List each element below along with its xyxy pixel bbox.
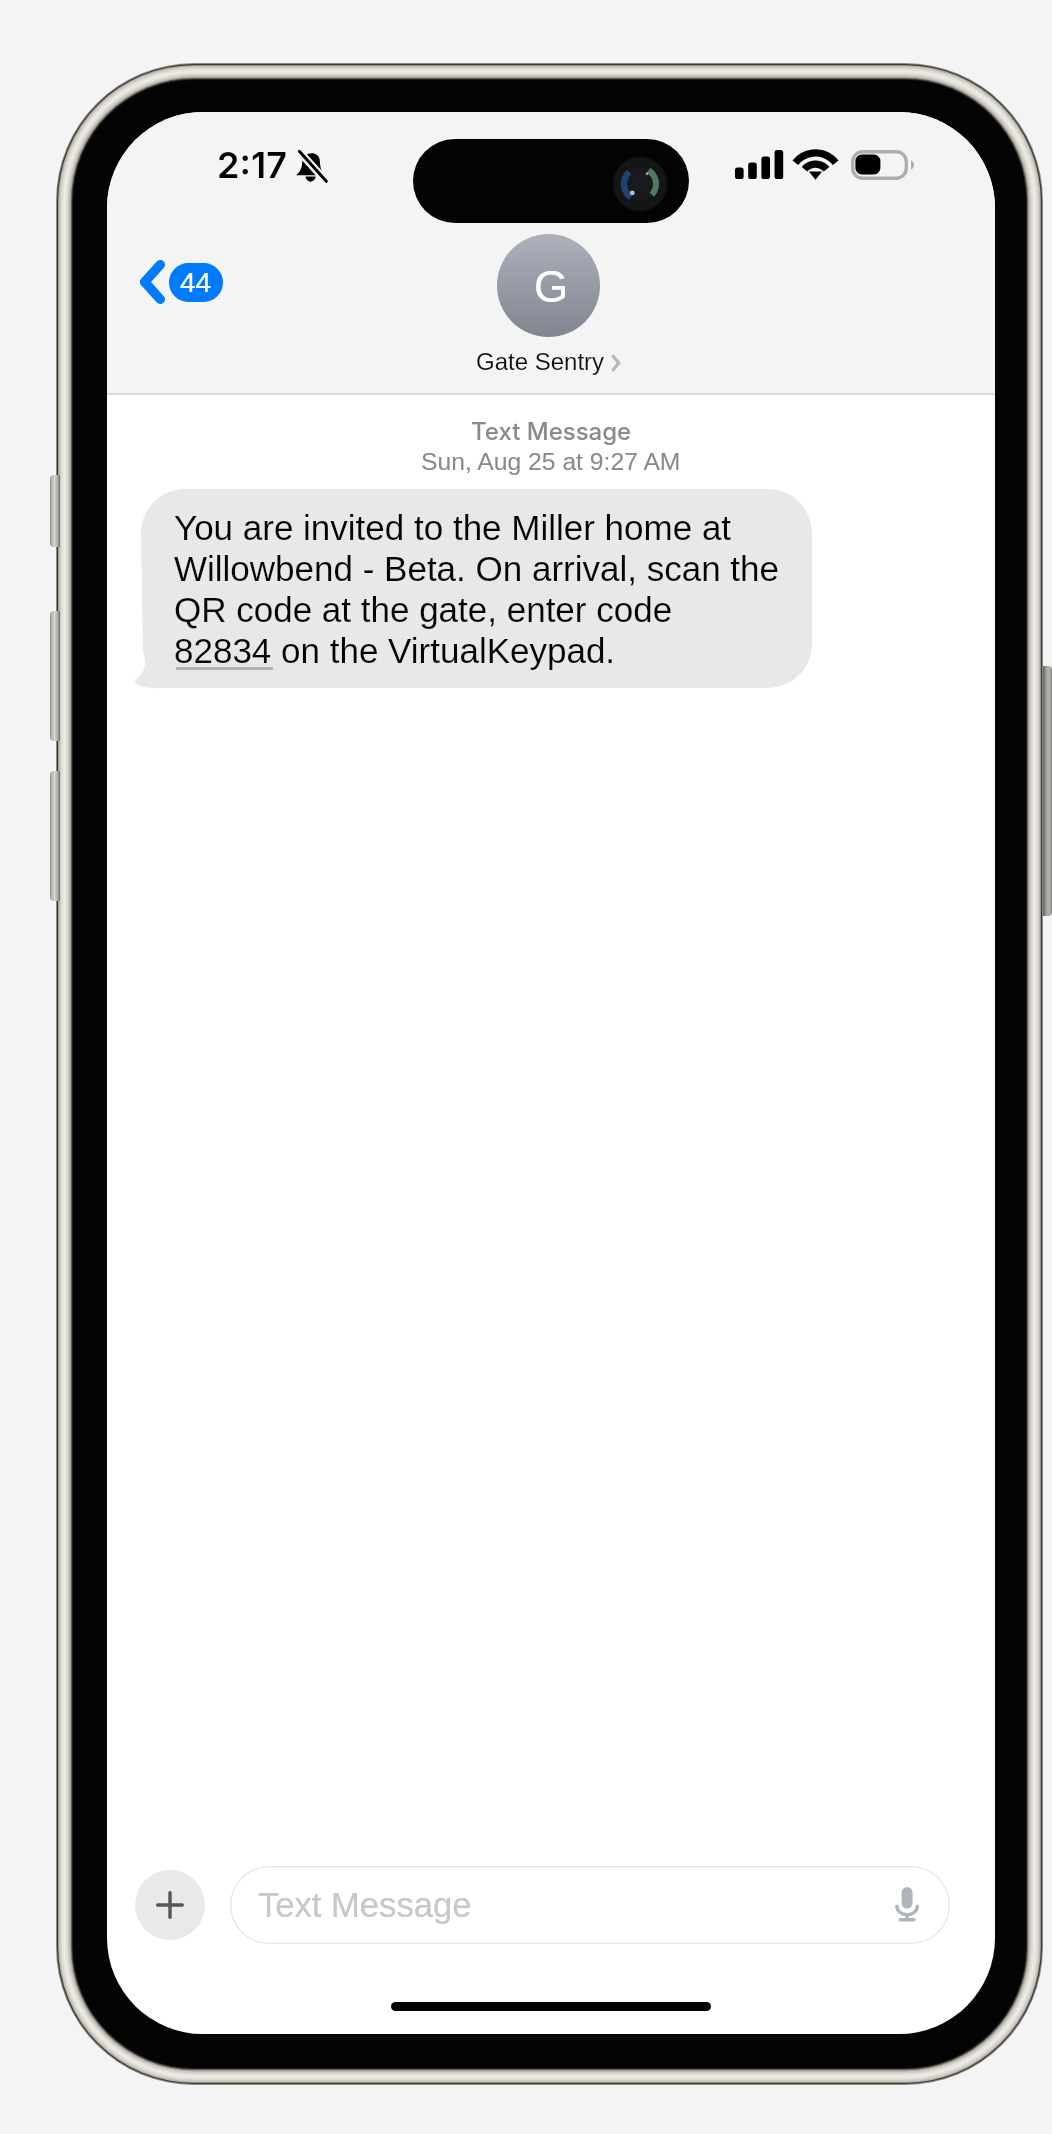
staticText: Text Message — [471, 417, 632, 446]
button[interactable]: Back, 44 unread — [130, 250, 233, 314]
staticText: Sun, Aug 25 at 9:27 AM — [421, 448, 681, 476]
staticText: Gate Sentry — [476, 348, 605, 375]
button[interactable]: Text Message — [230, 1866, 950, 1944]
staticText: 2:17 — [217, 143, 287, 187]
button[interactable] — [135, 489, 820, 694]
button[interactable]: G — [107, 234, 992, 375]
staticText: You are invited to the Miller home at Wi… — [174, 508, 779, 671]
button[interactable]: Add attachment — [135, 1870, 205, 1940]
staticText: 44 — [180, 267, 212, 298]
staticText: G — [534, 262, 569, 311]
staticText: Text Message — [258, 1886, 472, 1925]
